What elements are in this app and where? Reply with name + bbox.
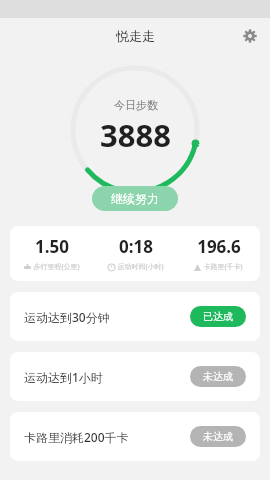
button[interactable]: 1.50 <box>10 235 94 272</box>
button[interactable]: 1.50 <box>10 226 260 281</box>
staticText: 步行里程(公里) <box>33 262 80 272</box>
button[interactable]: 运动达到30分钟 <box>10 292 260 341</box>
staticText: 悦走走 <box>116 28 155 44</box>
staticText: 运动达到30分钟 <box>24 309 110 325</box>
button[interactable]: 运动达到1小时 <box>10 352 260 401</box>
staticText: 3888 <box>100 114 171 156</box>
staticText: 运动时间(小时) <box>117 262 164 272</box>
staticText: 卡路里消耗200千卡 <box>24 429 129 445</box>
staticText: 继续努力 <box>111 191 159 206</box>
staticText: 0:18 <box>119 235 153 258</box>
staticText: 运动达到1小时 <box>24 369 103 385</box>
staticText: 今日步数 <box>114 98 158 112</box>
staticText: 1.50 <box>35 235 69 258</box>
staticText: 未达成 <box>203 370 233 383</box>
button[interactable]: 0:18 <box>94 235 177 272</box>
staticText: 已达成 <box>203 310 233 323</box>
button[interactable]: Settings <box>237 23 263 49</box>
staticText: 卡路里(千卡) <box>203 262 243 272</box>
staticText: 未达成 <box>203 430 233 443</box>
staticText: 196.6 <box>197 235 241 258</box>
button[interactable]: 卡路里消耗200千卡 <box>10 412 260 461</box>
button[interactable]: 继续努力 <box>92 186 178 211</box>
button[interactable]: 196.6 <box>177 235 260 272</box>
